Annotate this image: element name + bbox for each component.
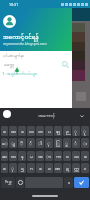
button[interactable]: Emoji — [16, 177, 24, 188]
staticText: myanmarsite.blogspot.com — [3, 41, 47, 46]
staticText: ် — [29, 140, 33, 147]
button[interactable]: 1. အချစ်ဇာတ်လမ်းများ — [0, 69, 72, 77]
button[interactable]: ခေတ္တ — [0, 59, 72, 67]
staticText: စ — [84, 153, 87, 160]
button[interactable]: More suggestions — [79, 113, 85, 119]
staticText: တ — [11, 153, 16, 160]
staticText: ဧ — [3, 165, 6, 172]
staticText: ဉ — [66, 128, 69, 135]
button[interactable]: အ — [36, 151, 44, 161]
button[interactable]: ူ — [81, 126, 89, 136]
button[interactable]: ဌ — [18, 163, 26, 173]
staticText: ။ — [68, 179, 70, 186]
button[interactable]: ေ — [1, 138, 8, 148]
button[interactable]: Search — [74, 177, 89, 188]
staticText: ွ — [65, 140, 69, 147]
button[interactable]: ခ — [18, 126, 26, 136]
staticText: ြ — [56, 140, 60, 147]
button[interactable]: ဏ — [54, 163, 62, 173]
button[interactable]: က — [54, 151, 62, 161]
staticText: ။ — [84, 165, 86, 172]
button[interactable]: ဂ — [27, 163, 35, 173]
staticText: ပ — [48, 128, 51, 135]
button[interactable]: ှ — [9, 163, 17, 173]
button[interactable]: ။ — [81, 163, 89, 173]
staticText: ဝ — [48, 165, 51, 172]
button[interactable]: ် — [27, 138, 35, 148]
staticText: အကောင့်ဝင်ရန် — [3, 32, 39, 44]
button[interactable]: Search — [61, 60, 70, 69]
staticText: ှ — [11, 165, 15, 172]
button[interactable]: ံ — [72, 138, 80, 148]
button[interactable]: ဉ — [63, 126, 71, 136]
button[interactable]: ့ — [45, 138, 53, 148]
staticText: ေ — [2, 140, 8, 147]
button[interactable]: စ — [81, 151, 89, 161]
staticText: ဌ — [21, 165, 24, 172]
staticText: န — [21, 153, 24, 160]
button[interactable]: မ — [27, 151, 35, 161]
staticText: ခ — [21, 128, 24, 135]
staticText: ?၁၂၃ — [5, 180, 12, 185]
button[interactable]: ဣ — [72, 163, 80, 173]
button[interactable]: ။ — [64, 177, 73, 188]
staticText: ူ — [83, 128, 87, 135]
staticText: မ — [30, 153, 33, 160]
button[interactable]: တ — [9, 151, 17, 161]
button[interactable]: း — [81, 138, 89, 148]
button[interactable] — [3, 15, 16, 28]
button[interactable]: ?၁၂၃ — [1, 177, 15, 188]
button[interactable]: င — [63, 151, 71, 161]
staticText: ဒ — [39, 165, 42, 172]
button[interactable]: Voice input — [3, 110, 11, 118]
button[interactable]: လ — [27, 126, 35, 136]
staticText: 10:31 — [9, 2, 19, 7]
button[interactable]: ု — [72, 126, 80, 136]
staticText: က — [56, 153, 61, 160]
staticText: ဏ — [55, 165, 61, 172]
button[interactable]: ဍ — [63, 163, 71, 173]
button[interactable]: ဈ — [54, 126, 62, 136]
staticText: ဆ — [2, 153, 7, 160]
button[interactable]: ပ — [45, 126, 53, 136]
staticText: ါ — [38, 140, 42, 147]
button[interactable]: ွ — [63, 138, 71, 148]
staticText: ိ — [20, 140, 24, 147]
button[interactable]: ိ — [18, 138, 26, 148]
button[interactable]: ပင်မစာမျက်နှာ — [0, 51, 72, 59]
staticText: ံ — [74, 140, 78, 147]
button[interactable]: ထ — [9, 126, 17, 136]
staticText: လ — [29, 128, 34, 135]
staticText: 1. အချစ်ဇာတ်လမ်းများ — [2, 71, 38, 78]
staticText: ဖ — [3, 128, 6, 135]
staticText: း — [83, 140, 88, 147]
staticText: ဘ — [38, 128, 43, 135]
button[interactable]: ျ — [9, 138, 17, 148]
staticText: ့ — [47, 140, 51, 147]
staticText: အ — [38, 153, 43, 160]
button[interactable]: န — [18, 151, 26, 161]
button[interactable]: ြ — [54, 138, 62, 148]
staticText: ဂ — [30, 165, 33, 172]
staticText: ပင်မစာမျက်နှာ — [3, 53, 25, 59]
staticText: ဈ — [56, 128, 60, 135]
staticText: င — [66, 153, 69, 160]
button[interactable]: ဒ — [36, 163, 44, 173]
button[interactable]: ဝ — [45, 163, 53, 173]
button[interactable]: ဆ — [1, 151, 8, 161]
button[interactable]: ါ — [36, 138, 44, 148]
staticText: ဣ — [74, 165, 79, 172]
button[interactable]: ာ — [45, 151, 53, 161]
button[interactable]: ဘ — [36, 126, 44, 136]
staticText: ျ — [11, 140, 15, 147]
staticText: အကောင့် — [38, 112, 56, 119]
staticText: ခေတ္တ — [4, 61, 15, 68]
staticText: သ — [74, 153, 79, 160]
button[interactable]: သ — [72, 151, 80, 161]
staticText: ထ — [11, 128, 16, 135]
staticText: ု — [74, 128, 78, 135]
button[interactable]: ဧ — [1, 163, 8, 173]
button[interactable]: ဖ — [1, 126, 8, 136]
staticText: ဍ — [66, 165, 69, 172]
